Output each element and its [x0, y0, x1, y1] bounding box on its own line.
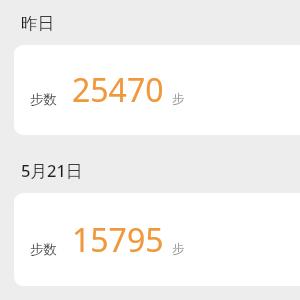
staticText: 步	[172, 91, 185, 107]
staticText: 步数	[30, 91, 57, 108]
staticText: 5月21日	[21, 159, 83, 182]
staticText: 步	[172, 241, 185, 257]
staticText: 昨日	[21, 13, 54, 34]
staticText: 15795	[72, 218, 164, 262]
staticText: 25470	[72, 68, 164, 112]
staticText: 步数	[30, 241, 57, 258]
button[interactable]: 步数	[14, 45, 300, 135]
button[interactable]: 步数	[14, 193, 300, 286]
